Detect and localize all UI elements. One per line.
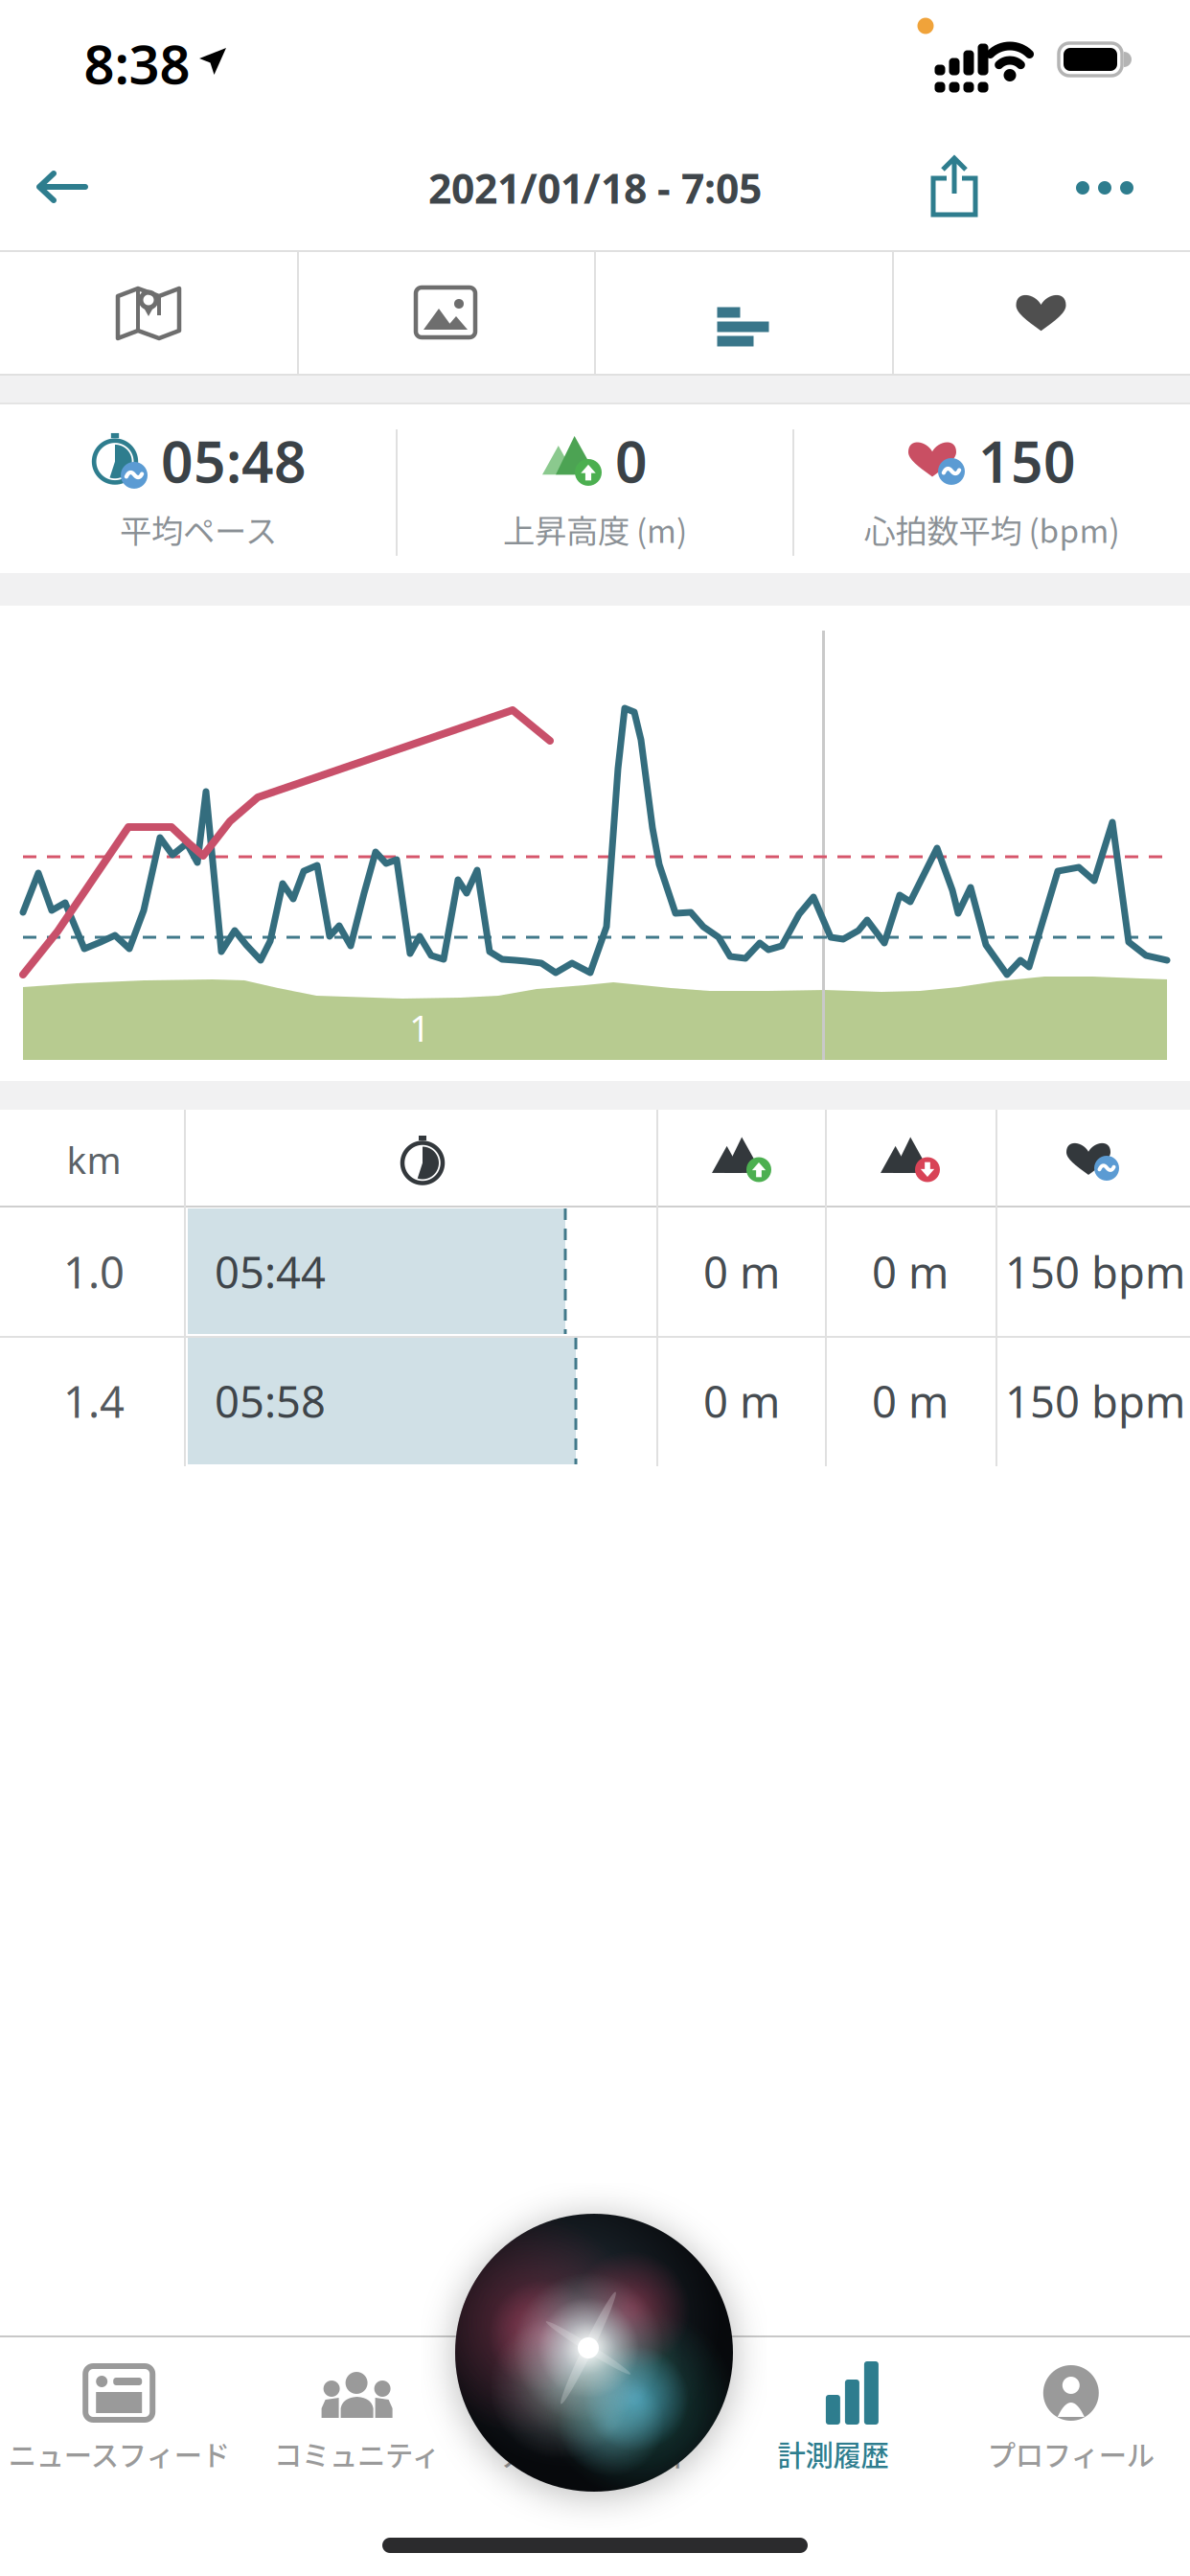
staticText: プロフィール [988, 2433, 1154, 2474]
staticText: 0 m [872, 1372, 949, 1430]
button[interactable]: Heart rate [892, 250, 1190, 375]
staticText: コミュニティ [274, 2433, 440, 2474]
button[interactable]: Share [920, 144, 989, 228]
staticText: 150 bpm [1005, 1243, 1185, 1301]
staticText: ニュースフィード [8, 2433, 230, 2474]
staticText: 平均ペース [120, 506, 277, 552]
staticText: 上昇高度 (m) [503, 506, 687, 552]
staticText: 150 [978, 424, 1076, 498]
staticText: 1.4 [63, 1372, 125, 1430]
staticText: 0 [615, 424, 648, 498]
button[interactable]: ニュースフィード [0, 2335, 238, 2474]
staticText: 05:48 [161, 424, 307, 498]
staticText: 150 bpm [1005, 1372, 1185, 1430]
button[interactable]: Back [22, 156, 104, 219]
staticText: 0 m [703, 1372, 780, 1430]
staticText: アクティビティ [499, 2433, 691, 2474]
staticText: 0 m [703, 1243, 780, 1301]
staticText: 05:44 [215, 1243, 326, 1301]
button[interactable]: プロフィール [952, 2335, 1190, 2474]
staticText: km [67, 1135, 121, 1184]
staticText: 1 [409, 1003, 430, 1052]
button[interactable]: アクティビティ [476, 2335, 714, 2474]
button[interactable]: Photos [297, 250, 594, 375]
staticText: 05:58 [215, 1372, 326, 1430]
staticText: 1.0 [63, 1243, 125, 1301]
staticText: 計測履歴 [777, 2433, 889, 2474]
button[interactable]: 計測履歴 [714, 2335, 952, 2474]
staticText: 8:38 [84, 28, 190, 99]
button[interactable]: Map [0, 250, 297, 375]
staticText: 0 m [872, 1243, 949, 1301]
staticText: 2021/01/18 - 7:05 [428, 161, 762, 215]
staticText: 心拍数平均 (bpm) [864, 506, 1120, 552]
button[interactable]: コミュニティ [238, 2335, 476, 2474]
button[interactable]: Splits [594, 250, 892, 375]
button[interactable]: More [1063, 168, 1147, 208]
